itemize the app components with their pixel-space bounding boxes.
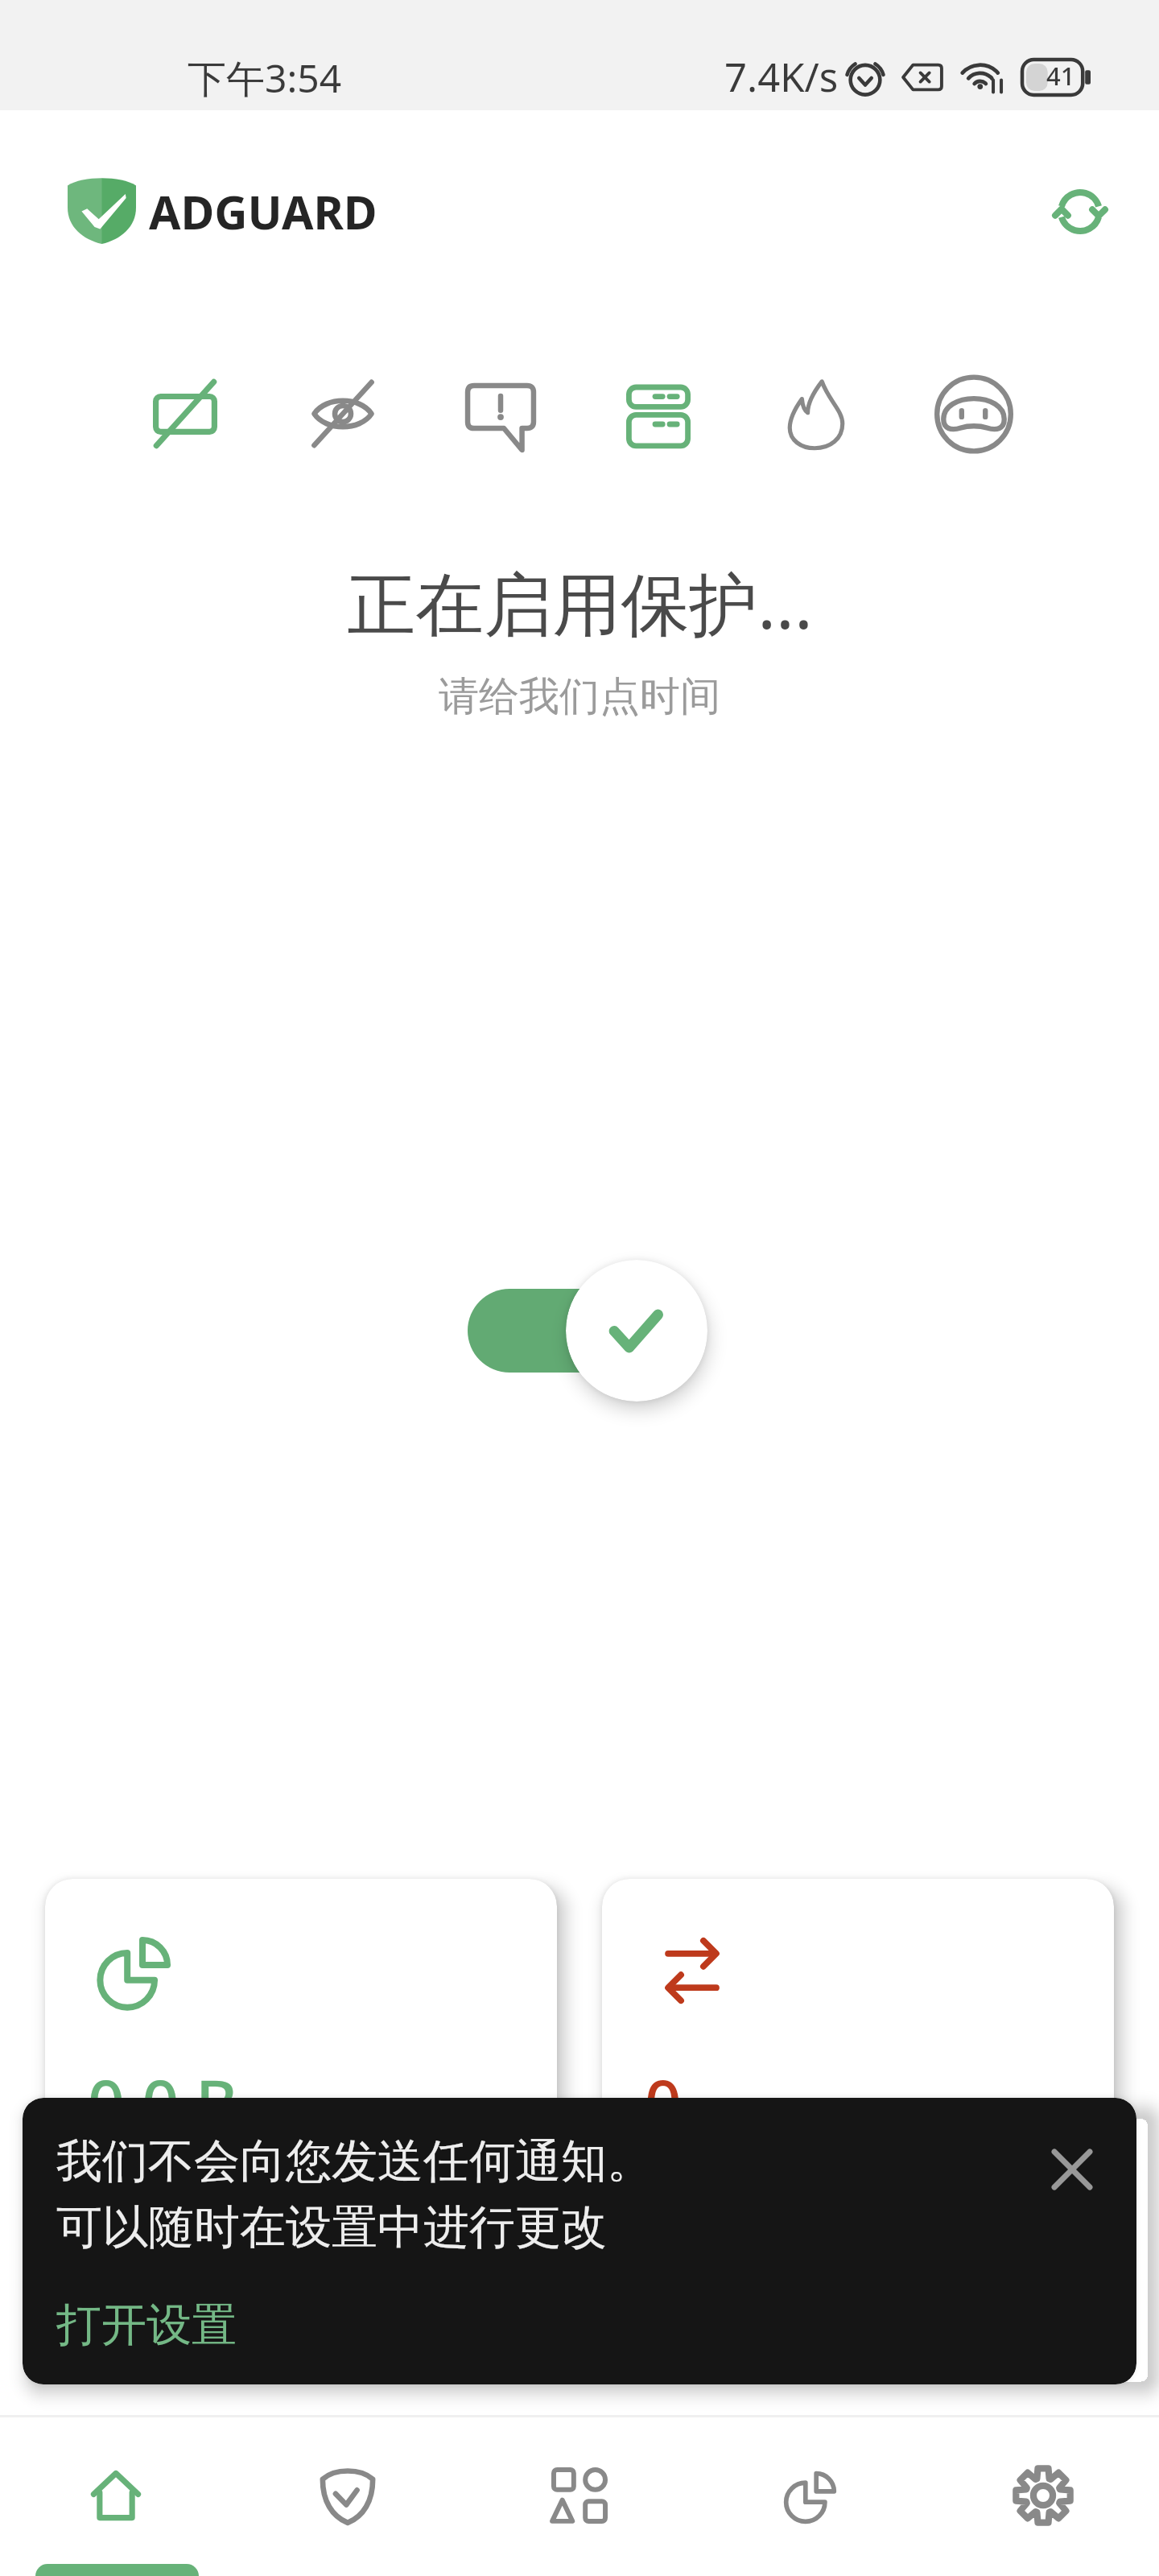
- button[interactable]: Ads blocked: [134, 362, 237, 465]
- button[interactable]: Protection toggle: [468, 1260, 707, 1402]
- button[interactable]: DNS protection: [607, 362, 710, 465]
- staticText: 0: [645, 2058, 682, 2145]
- button[interactable]: Statistics: [734, 2428, 889, 2563]
- staticText: 可以随时在设置中进行更改: [56, 2198, 607, 2256]
- button[interactable]: Home: [39, 2428, 193, 2563]
- button[interactable]: 0: [602, 1879, 1114, 2265]
- button[interactable]: Trackers blocked: [291, 362, 394, 465]
- staticText: 我们不会向您发送任何通知。: [56, 2132, 653, 2190]
- button[interactable]: Stealth mode: [922, 362, 1025, 465]
- button[interactable]: Settings: [966, 2428, 1120, 2563]
- staticText: 正在启用保护...: [347, 555, 813, 649]
- staticText: 下午3:54: [188, 52, 342, 105]
- button[interactable]: 打开设置: [56, 2297, 237, 2354]
- button[interactable]: Annoyances: [449, 365, 552, 469]
- staticText: 打开设置: [56, 2297, 237, 2354]
- staticText: 7.4K/s: [724, 50, 839, 104]
- button[interactable]: 0.0 B: [45, 1879, 557, 2265]
- staticText: ADGUARD: [149, 180, 377, 243]
- button[interactable]: Firewall: [765, 362, 868, 465]
- staticText: 请给我们点时间: [439, 671, 720, 722]
- button[interactable]: Refresh: [1038, 170, 1122, 254]
- staticText: 0.0 B: [88, 2058, 238, 2145]
- staticText: 41: [1046, 59, 1075, 93]
- button[interactable]: Protection: [270, 2428, 425, 2563]
- button[interactable]: Apps: [502, 2428, 657, 2563]
- button[interactable]: Close: [1033, 2131, 1111, 2208]
